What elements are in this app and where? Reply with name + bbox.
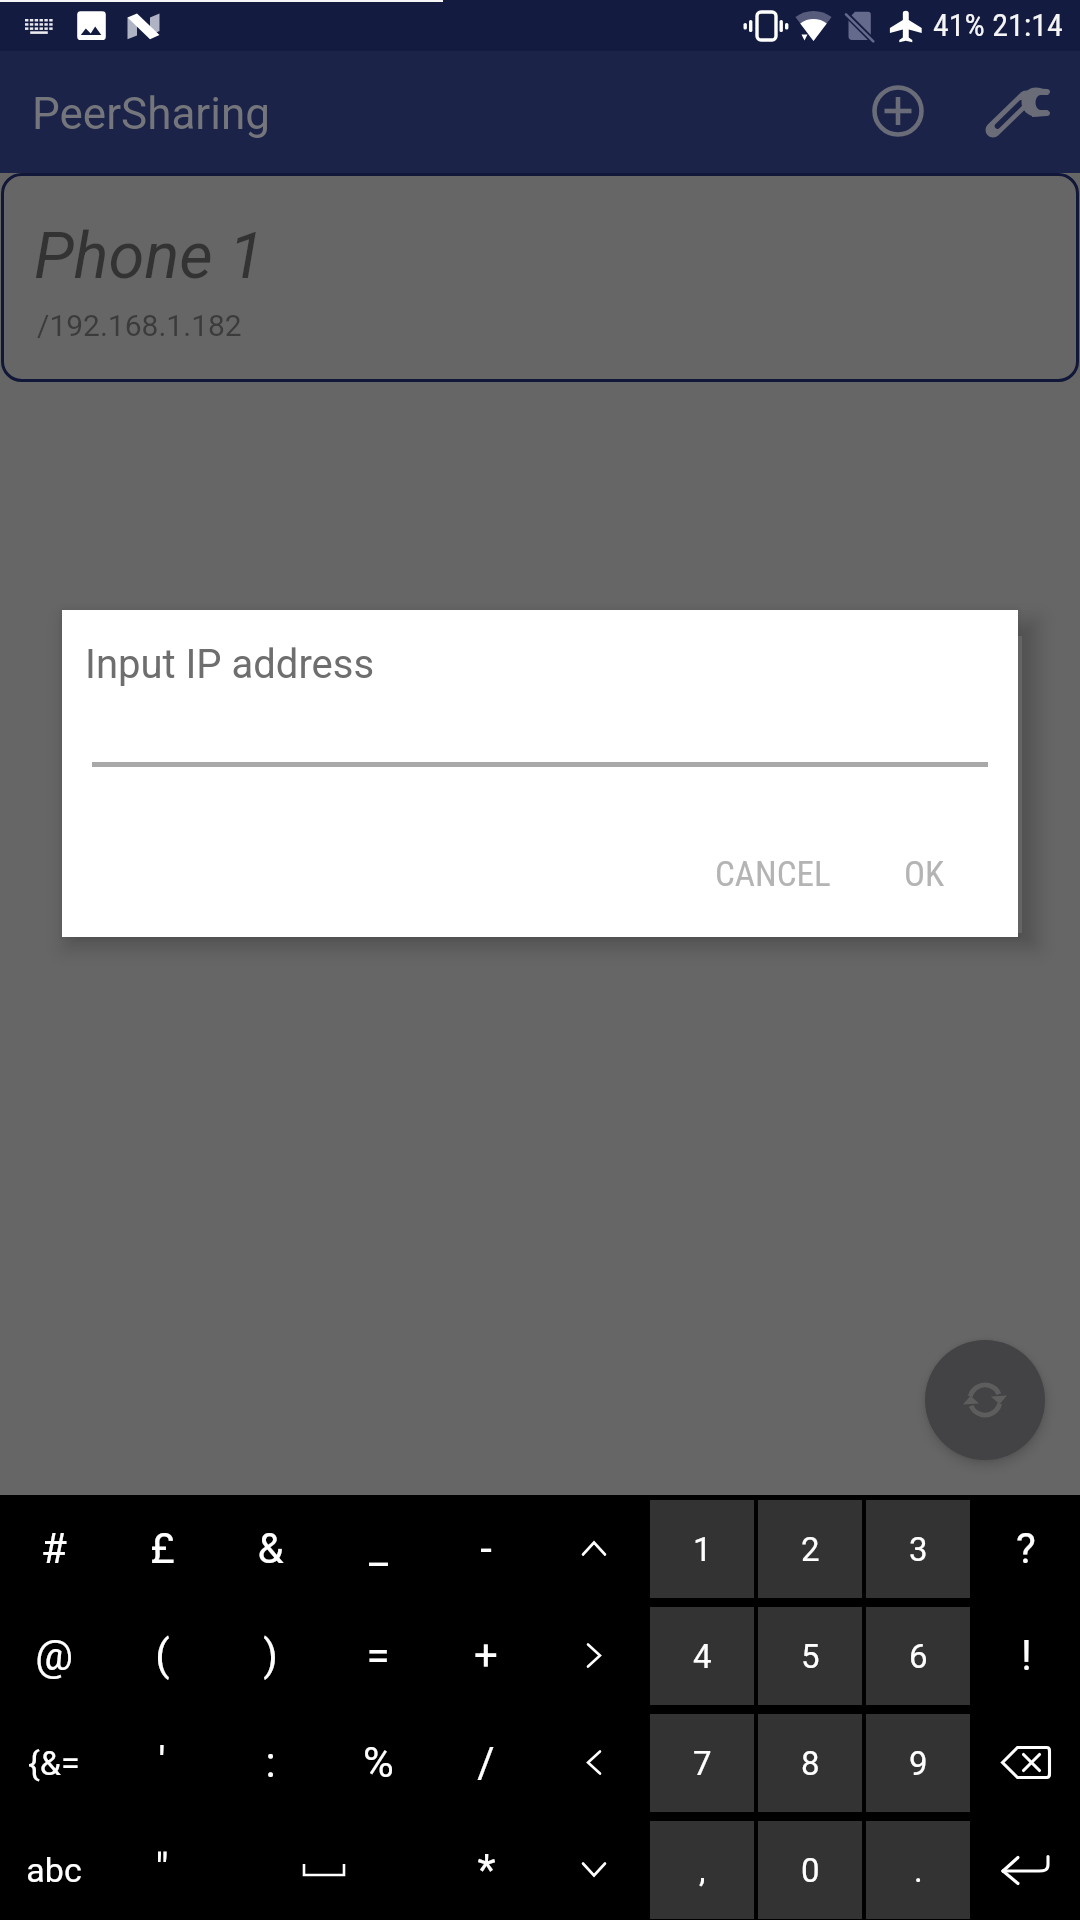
staticText: 2 <box>801 1530 820 1569</box>
button[interactable]: , <box>650 1821 754 1919</box>
button[interactable]: : <box>216 1711 324 1814</box>
button[interactable]: - <box>432 1497 540 1600</box>
button[interactable]: / <box>432 1711 540 1814</box>
staticText: ( <box>155 1631 170 1680</box>
staticText: Phone 1 <box>34 218 265 294</box>
button[interactable]: 5 <box>758 1607 862 1705</box>
button[interactable]: Settings <box>975 75 1075 155</box>
staticText: 8 <box>801 1744 820 1783</box>
staticText: abc <box>26 1850 82 1890</box>
button[interactable]: _ <box>324 1497 432 1600</box>
staticText: 0 <box>801 1851 820 1890</box>
button[interactable]: 0 <box>758 1821 862 1919</box>
button[interactable]: + <box>432 1604 540 1707</box>
button[interactable]: 8 <box>758 1714 862 1812</box>
staticText: ) <box>263 1631 278 1680</box>
staticText: : <box>265 1738 276 1787</box>
button[interactable]: " <box>108 1818 216 1920</box>
button[interactable]: Space <box>216 1818 432 1920</box>
button[interactable]: ? <box>972 1497 1080 1600</box>
button[interactable]: Shift <box>540 1497 648 1600</box>
button[interactable]: * <box>432 1818 540 1920</box>
button[interactable]: ' <box>108 1711 216 1814</box>
staticText: 41% 21:14 <box>933 6 1063 44</box>
staticText: + <box>474 1631 498 1680</box>
button[interactable]: OK <box>878 828 970 920</box>
staticText: * <box>477 1845 496 1894</box>
staticText: 9 <box>909 1744 928 1783</box>
button[interactable]: 1 <box>650 1500 754 1598</box>
button[interactable]: Enter <box>972 1818 1080 1920</box>
button[interactable]: 7 <box>650 1714 754 1812</box>
staticText: 1 <box>693 1530 712 1569</box>
staticText: {&= <box>28 1743 80 1783</box>
button[interactable]: Phone 1 <box>1 173 1079 382</box>
button[interactable]: 9 <box>866 1714 970 1812</box>
button[interactable]: Previous <box>540 1711 648 1814</box>
button[interactable]: # <box>0 1497 108 1600</box>
staticText: 5 <box>801 1637 820 1676</box>
button[interactable]: Add peer <box>848 61 948 161</box>
button[interactable]: CANCEL <box>692 828 854 920</box>
button[interactable]: 6 <box>866 1607 970 1705</box>
staticText: = <box>366 1631 390 1680</box>
button[interactable]: abc <box>0 1818 108 1920</box>
staticText: /192.168.1.182 <box>37 308 242 343</box>
button[interactable]: ) <box>216 1604 324 1707</box>
staticText: £ <box>150 1524 175 1573</box>
staticText: OK <box>904 854 945 895</box>
button[interactable]: = <box>324 1604 432 1707</box>
staticText: 6 <box>909 1637 928 1676</box>
button[interactable]: 4 <box>650 1607 754 1705</box>
staticText: 4 <box>693 1637 712 1676</box>
staticText: , <box>699 1851 706 1890</box>
staticText: - <box>480 1524 492 1573</box>
staticText: " <box>155 1845 169 1894</box>
button[interactable]: {&= <box>0 1711 108 1814</box>
staticText: Input IP address <box>85 641 375 688</box>
staticText: ! <box>1021 1631 1032 1680</box>
button[interactable]: Next <box>540 1604 648 1707</box>
staticText: CANCEL <box>715 854 831 895</box>
staticText: @ <box>35 1631 73 1680</box>
staticText: _ <box>369 1524 388 1573</box>
staticText: 7 <box>693 1744 712 1783</box>
button[interactable]: & <box>216 1497 324 1600</box>
button[interactable]: Hide keyboard <box>540 1818 648 1920</box>
button[interactable]: Backspace <box>972 1711 1080 1814</box>
staticText: PeerSharing <box>32 88 270 140</box>
button[interactable]: ( <box>108 1604 216 1707</box>
staticText: ? <box>1016 1524 1036 1573</box>
staticText: 3 <box>909 1530 928 1569</box>
button[interactable]: @ <box>0 1604 108 1707</box>
button[interactable]: % <box>324 1711 432 1814</box>
staticText: / <box>477 1738 495 1787</box>
button[interactable]: Refresh <box>925 1340 1045 1460</box>
staticText: % <box>363 1738 394 1787</box>
staticText: # <box>41 1524 67 1573</box>
staticText: . <box>914 1851 923 1890</box>
button[interactable]: . <box>866 1821 970 1919</box>
button[interactable]: 2 <box>758 1500 862 1598</box>
staticText: ' <box>158 1738 166 1787</box>
staticText: & <box>257 1524 284 1573</box>
button[interactable]: ! <box>972 1604 1080 1707</box>
button[interactable]: 3 <box>866 1500 970 1598</box>
button[interactable]: £ <box>108 1497 216 1600</box>
